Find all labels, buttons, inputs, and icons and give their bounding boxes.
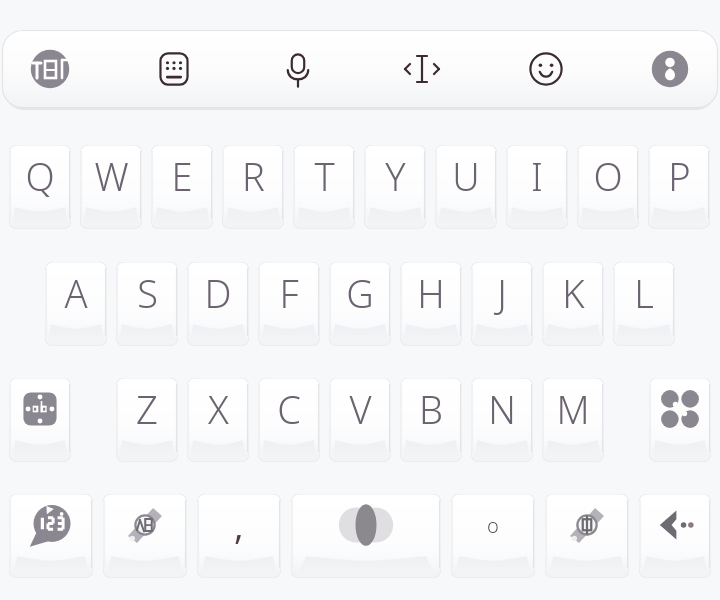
- staticText: K: [562, 267, 585, 319]
- button[interactable]: N: [471, 378, 533, 462]
- staticText: H: [417, 267, 445, 319]
- staticText: S: [137, 267, 158, 319]
- staticText: F: [279, 267, 299, 319]
- staticText: M: [556, 383, 590, 435]
- button[interactable]: E: [151, 145, 213, 229]
- button[interactable]: Emoji: [520, 43, 572, 95]
- button[interactable]: J: [471, 262, 533, 346]
- button[interactable]: Move cursor: [396, 43, 448, 95]
- staticText: U: [452, 150, 480, 202]
- button[interactable]: H: [400, 262, 462, 346]
- button[interactable]: More keys: [649, 378, 711, 462]
- button[interactable]: D: [187, 262, 249, 346]
- button[interactable]: Backspace: [639, 494, 711, 578]
- button[interactable]: O: [577, 145, 639, 229]
- staticText: B: [419, 383, 443, 435]
- button[interactable]: V: [329, 378, 391, 462]
- staticText: R: [242, 150, 265, 202]
- button[interactable]: Symbols: [103, 494, 187, 578]
- button[interactable]: F: [258, 262, 320, 346]
- staticText: D: [204, 267, 232, 319]
- staticText: C: [277, 383, 301, 435]
- staticText: E: [171, 150, 193, 202]
- button[interactable]: S: [116, 262, 178, 346]
- button[interactable]: W: [80, 145, 142, 229]
- staticText: X: [208, 383, 229, 435]
- staticText: T: [314, 150, 335, 202]
- button[interactable]: Settings: [644, 43, 696, 95]
- button[interactable]: Input method: [24, 43, 76, 95]
- button[interactable]: B: [400, 378, 462, 462]
- button[interactable]: X: [187, 378, 249, 462]
- button[interactable]: Voice input: [272, 43, 324, 95]
- button[interactable]: A: [45, 262, 107, 346]
- button[interactable]: C: [258, 378, 320, 462]
- staticText: J: [497, 267, 507, 319]
- button[interactable]: Comma: [197, 494, 281, 578]
- staticText: o: [487, 512, 499, 539]
- staticText: L: [634, 267, 654, 319]
- staticText: Z: [136, 383, 158, 435]
- staticText: N: [488, 383, 516, 435]
- button[interactable]: Y: [364, 145, 426, 229]
- staticText: A: [64, 267, 88, 319]
- button[interactable]: G: [329, 262, 391, 346]
- staticText: V: [349, 383, 372, 435]
- staticText: W: [94, 150, 129, 202]
- button[interactable]: Z: [116, 378, 178, 462]
- button[interactable]: Keyboard layout: [148, 43, 200, 95]
- button[interactable]: P: [648, 145, 710, 229]
- button[interactable]: Space: [291, 494, 441, 578]
- button[interactable]: Chinese input: [545, 494, 629, 578]
- button[interactable]: Numbers and symbols: [9, 494, 93, 578]
- button[interactable]: U: [435, 145, 497, 229]
- button[interactable]: I: [506, 145, 568, 229]
- button[interactable]: T: [293, 145, 355, 229]
- button[interactable]: M: [542, 378, 604, 462]
- button[interactable]: Shift: [9, 378, 71, 462]
- staticText: Q: [25, 150, 55, 202]
- staticText: P: [668, 150, 691, 202]
- staticText: Y: [385, 150, 406, 202]
- staticText: ,: [234, 501, 244, 550]
- staticText: I: [531, 150, 543, 202]
- button[interactable]: R: [222, 145, 284, 229]
- button[interactable]: L: [613, 262, 675, 346]
- button[interactable]: Q: [9, 145, 71, 229]
- button[interactable]: Period: [451, 494, 535, 578]
- button[interactable]: K: [542, 262, 604, 346]
- staticText: O: [593, 150, 623, 202]
- staticText: G: [346, 267, 374, 319]
